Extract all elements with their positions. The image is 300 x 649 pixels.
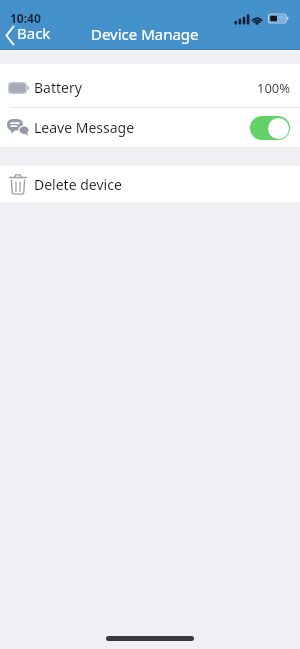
button[interactable]: Delete device [0,166,300,202]
staticText: Back [17,23,51,43]
button[interactable]: Battery [0,64,300,107]
staticText: 10:40 [10,10,41,26]
button[interactable]: Back [0,20,60,50]
staticText: Device Manage [91,24,199,44]
staticText: Leave Message [34,118,135,137]
staticText: Delete device [34,175,122,194]
button[interactable]: Leave Message [0,108,300,147]
staticText: Battery [34,78,82,97]
staticText: 100% [257,79,291,97]
button[interactable] [250,116,290,140]
